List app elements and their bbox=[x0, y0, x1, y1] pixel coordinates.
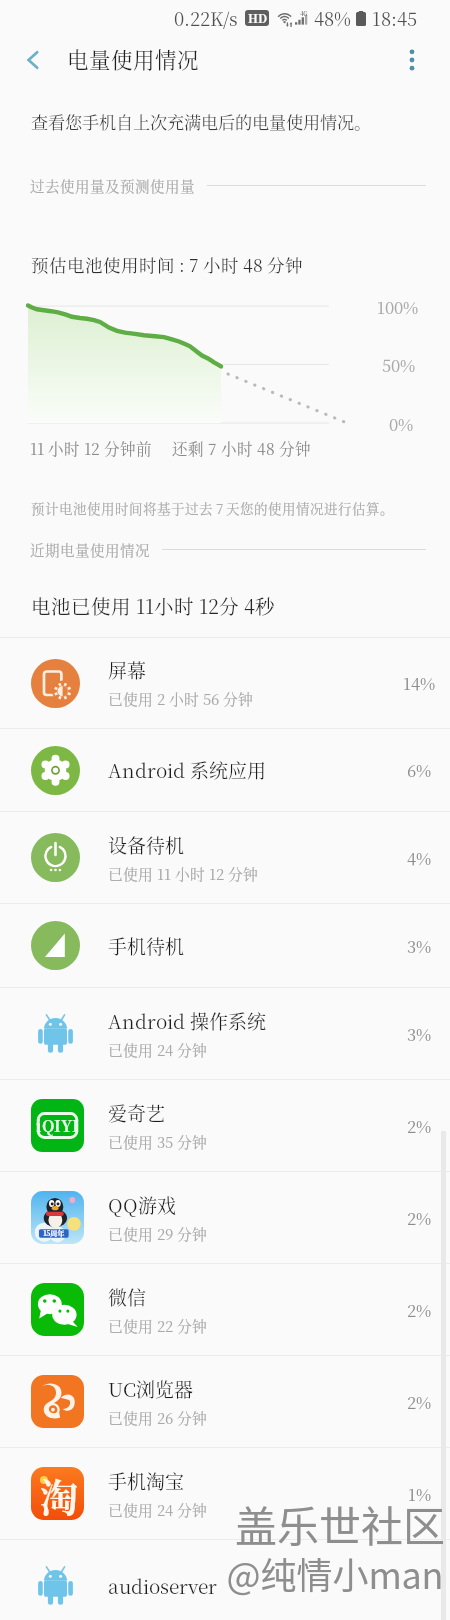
button[interactable] bbox=[0, 812, 450, 903]
button[interactable] bbox=[0, 1356, 450, 1447]
button[interactable]: More options bbox=[390, 38, 434, 82]
button[interactable] bbox=[0, 1264, 450, 1355]
button[interactable] bbox=[0, 729, 450, 811]
button[interactable] bbox=[0, 904, 450, 987]
button[interactable] bbox=[0, 1172, 450, 1263]
button[interactable] bbox=[0, 1080, 450, 1171]
button[interactable]: Back bbox=[11, 38, 55, 82]
button[interactable] bbox=[0, 1540, 450, 1620]
button[interactable] bbox=[0, 988, 450, 1079]
button[interactable] bbox=[0, 1448, 450, 1539]
button[interactable] bbox=[0, 638, 450, 728]
